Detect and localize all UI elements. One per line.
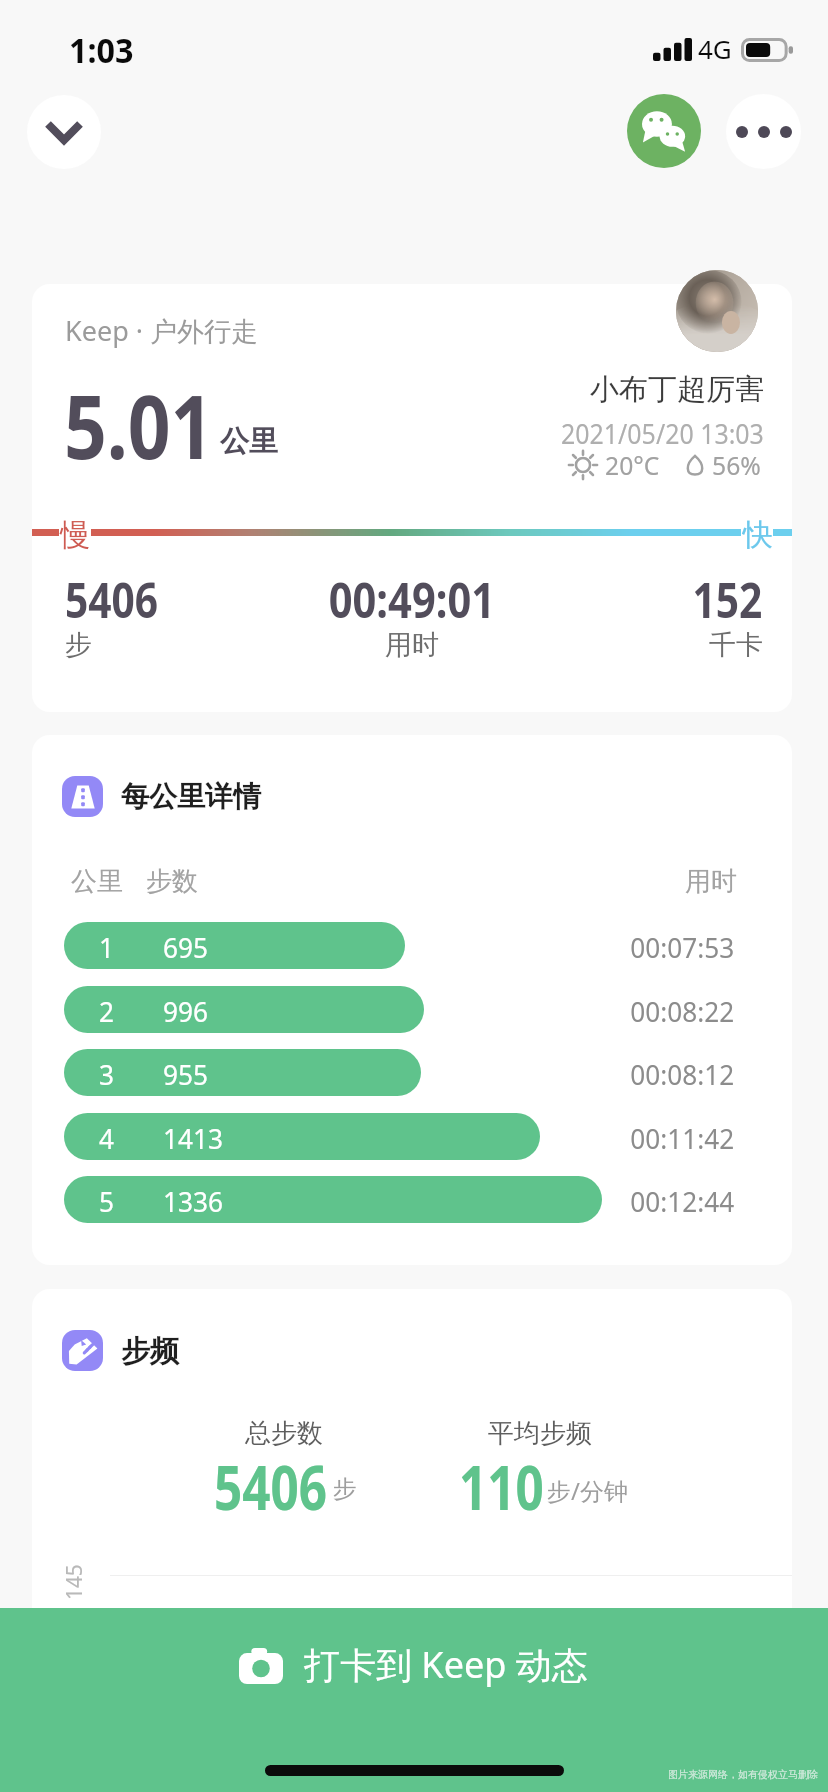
staticText: 每公里详情 xyxy=(121,779,261,814)
staticText: 955 xyxy=(163,1056,209,1093)
staticText: 5.01 xyxy=(64,366,214,484)
staticText: 5406 xyxy=(214,1445,327,1528)
staticText: 步 xyxy=(333,1474,357,1504)
staticText: 20°C xyxy=(605,447,660,482)
staticText: 3 xyxy=(99,1056,114,1093)
staticText: 快 xyxy=(743,516,773,554)
staticText: 小布丁超厉害 xyxy=(590,371,764,408)
staticText: 公里 xyxy=(71,865,123,898)
button[interactable]: 打卡到 Keep 动态 xyxy=(0,1608,828,1792)
staticText: 步/分钟 xyxy=(547,1474,628,1507)
staticText: 996 xyxy=(163,993,209,1030)
staticText: 用时 xyxy=(685,865,737,898)
staticText: 1336 xyxy=(163,1183,223,1220)
staticText: 5 xyxy=(99,1183,114,1220)
staticText: 慢 xyxy=(60,516,90,554)
staticText: 平均步频 xyxy=(488,1417,592,1450)
button[interactable]: Share to WeChat xyxy=(627,94,701,168)
staticText: 1413 xyxy=(163,1120,223,1157)
staticText: 千卡 xyxy=(709,628,763,662)
staticText: 56% xyxy=(712,447,761,482)
staticText: 110 xyxy=(459,1445,544,1528)
staticText: 步数 xyxy=(146,865,198,898)
staticText: 步 xyxy=(65,628,92,662)
staticText: Keep · 户外行走 xyxy=(65,312,259,349)
staticText: 5406 xyxy=(65,566,159,633)
staticText: 1 xyxy=(99,929,114,966)
staticText: 公里 xyxy=(220,423,278,460)
staticText: 00:08:12 xyxy=(630,1056,735,1093)
staticText: 2 xyxy=(99,993,114,1030)
staticText: 00:12:44 xyxy=(630,1183,735,1220)
staticText: 152 xyxy=(692,566,763,633)
staticText: 步频 xyxy=(121,1333,179,1370)
staticText: 695 xyxy=(163,929,209,966)
staticText: 4G xyxy=(698,31,732,66)
staticText: 用时 xyxy=(385,628,439,662)
staticText: 图片来源网络，如有侵权立马删除 xyxy=(668,1768,818,1781)
staticText: 4 xyxy=(99,1120,114,1157)
staticText: 2021/05/20 13:03 xyxy=(561,414,764,452)
staticText: 总步数 xyxy=(245,1417,323,1450)
staticText: 打卡到 Keep 动态 xyxy=(304,1640,588,1689)
button[interactable]: More options xyxy=(726,94,801,169)
staticText: 00:11:42 xyxy=(630,1120,735,1157)
button[interactable]: Collapse xyxy=(27,95,101,169)
staticText: 145 xyxy=(58,1564,88,1600)
staticText: 00:07:53 xyxy=(630,929,735,966)
staticText: 00:49:01 xyxy=(329,566,495,633)
staticText: 00:08:22 xyxy=(630,993,735,1030)
staticText: 1:03 xyxy=(69,27,134,73)
